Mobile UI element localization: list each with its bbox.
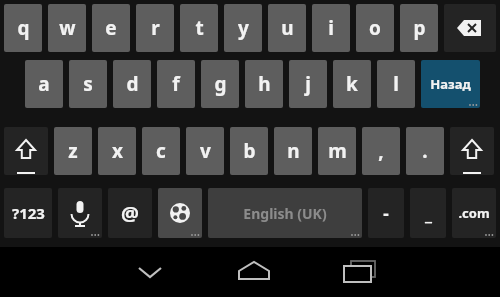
- staticText: c: [156, 138, 166, 164]
- button[interactable]: y: [224, 4, 262, 52]
- staticText: -: [383, 202, 389, 225]
- button[interactable]: z: [54, 127, 92, 175]
- button[interactable]: Change language: [158, 188, 202, 238]
- staticText: u: [281, 15, 294, 41]
- staticText: n: [287, 138, 300, 164]
- button[interactable]: g: [201, 60, 239, 108]
- button[interactable]: n: [274, 127, 312, 175]
- staticText: r: [151, 15, 160, 41]
- staticText: e: [105, 15, 117, 41]
- staticText: s: [83, 71, 93, 97]
- button[interactable]: u: [268, 4, 306, 52]
- staticText: Назад: [430, 75, 471, 93]
- staticText: j: [305, 71, 311, 97]
- button[interactable]: e: [92, 4, 130, 52]
- button[interactable]: s: [69, 60, 107, 108]
- button[interactable]: Hide keyboard: [124, 255, 176, 289]
- staticText: English (UK): [243, 204, 327, 223]
- staticText: x: [112, 138, 123, 164]
- staticText: m: [328, 138, 347, 164]
- button[interactable]: b: [230, 127, 268, 175]
- staticText: i: [328, 15, 334, 41]
- staticText: l: [393, 71, 399, 97]
- staticText: a: [38, 71, 50, 97]
- button[interactable]: l: [377, 60, 415, 108]
- staticText: g: [214, 71, 227, 97]
- staticText: w: [59, 15, 76, 41]
- staticText: .com: [458, 204, 490, 222]
- button[interactable]: t: [180, 4, 218, 52]
- button[interactable]: _: [410, 188, 446, 238]
- staticText: z: [68, 138, 78, 164]
- button[interactable]: a: [25, 60, 63, 108]
- button[interactable]: Home: [228, 255, 280, 289]
- staticText: p: [413, 15, 426, 41]
- button[interactable]: k: [333, 60, 371, 108]
- button[interactable]: ?123: [4, 188, 52, 238]
- button[interactable]: d: [113, 60, 151, 108]
- staticText: ?123: [12, 203, 45, 223]
- button[interactable]: w: [48, 4, 86, 52]
- staticText: y: [238, 15, 249, 41]
- button[interactable]: j: [289, 60, 327, 108]
- staticText: f: [172, 71, 180, 97]
- staticText: k: [346, 71, 358, 97]
- button[interactable]: .: [406, 127, 444, 175]
- button[interactable]: .com: [452, 188, 496, 238]
- staticText: _: [425, 202, 432, 225]
- staticText: .: [422, 138, 428, 164]
- button[interactable]: Voice input: [58, 188, 102, 238]
- button[interactable]: @: [108, 188, 152, 238]
- button[interactable]: Backspace: [444, 4, 496, 52]
- button[interactable]: r: [136, 4, 174, 52]
- button[interactable]: h: [245, 60, 283, 108]
- button[interactable]: English (UK): [208, 188, 362, 238]
- button[interactable]: Shift: [450, 127, 494, 175]
- button[interactable]: ,: [362, 127, 400, 175]
- button[interactable]: p: [400, 4, 438, 52]
- button[interactable]: Shift: [4, 127, 48, 175]
- staticText: b: [243, 138, 256, 164]
- staticText: o: [369, 15, 381, 41]
- button[interactable]: o: [356, 4, 394, 52]
- staticText: @: [121, 200, 139, 227]
- staticText: t: [195, 15, 204, 41]
- button[interactable]: Recent apps: [333, 255, 385, 289]
- staticText: d: [126, 71, 139, 97]
- button[interactable]: x: [98, 127, 136, 175]
- staticText: v: [200, 138, 211, 164]
- button[interactable]: c: [142, 127, 180, 175]
- button[interactable]: i: [312, 4, 350, 52]
- button[interactable]: q: [4, 4, 42, 52]
- staticText: ,: [378, 138, 384, 164]
- button[interactable]: v: [186, 127, 224, 175]
- staticText: h: [258, 71, 271, 97]
- button[interactable]: m: [318, 127, 356, 175]
- button[interactable]: f: [157, 60, 195, 108]
- staticText: q: [17, 15, 30, 41]
- button[interactable]: Назад: [421, 60, 480, 108]
- button[interactable]: -: [368, 188, 404, 238]
